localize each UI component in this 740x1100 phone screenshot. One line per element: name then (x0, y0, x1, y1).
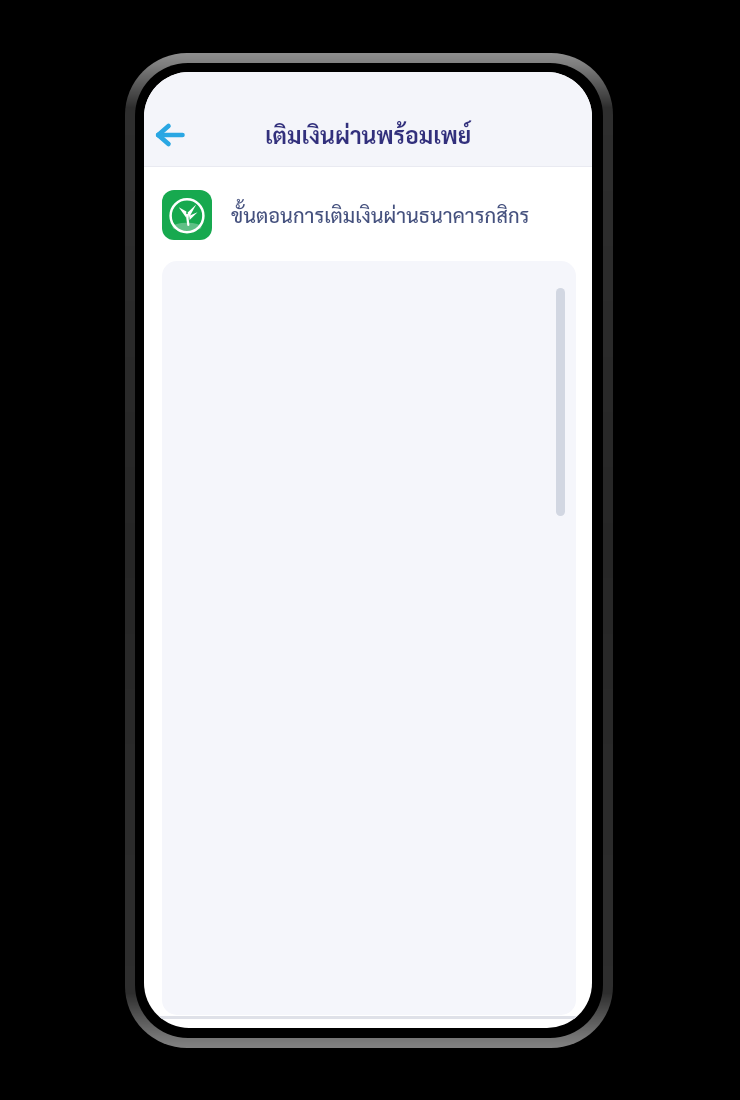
button[interactable] (144, 113, 196, 157)
staticText: ขั้นตอนการเติมเงินผ่านธนาคารกสิกร (231, 202, 530, 228)
staticText: เติมเงินผ่านพร้อมเพย์ (265, 119, 472, 149)
button[interactable] (144, 184, 592, 244)
